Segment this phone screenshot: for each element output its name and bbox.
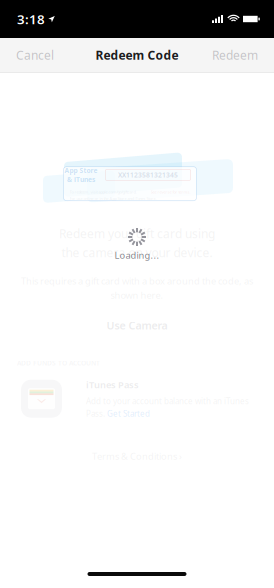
button[interactable]: Cancel — [0, 38, 70, 72]
staticText: App Store — [64, 166, 97, 175]
staticText: For use online or in the App Store and i… — [69, 196, 156, 201]
staticText: Loading... — [114, 249, 159, 261]
staticText: Use Camera — [106, 318, 167, 333]
staticText: & iTunes — [67, 175, 95, 184]
staticText: Add to your account balance with an iTun… — [86, 396, 249, 406]
staticText: Redeem — [212, 47, 258, 63]
button[interactable]: iTunes Pass — [0, 378, 274, 419]
staticText: Redeem Code — [95, 47, 178, 63]
staticText: 3:18 — [17, 10, 45, 28]
staticText: See reverse for terms. — [150, 189, 190, 195]
staticText: Cancel — [16, 47, 54, 63]
button[interactable]: Use Camera — [86, 314, 187, 337]
staticText: To redeem, visit apple.com/go/giftcard. — [69, 189, 136, 195]
staticText: Redeem your gift card using — [59, 226, 215, 242]
staticText: Get Started — [107, 408, 150, 419]
staticText: iTunes Pass — [86, 378, 139, 391]
staticText: the camera on your device. — [61, 245, 212, 260]
button[interactable]: Redeem — [196, 38, 274, 72]
staticText: XX1123581321345 — [118, 170, 178, 179]
